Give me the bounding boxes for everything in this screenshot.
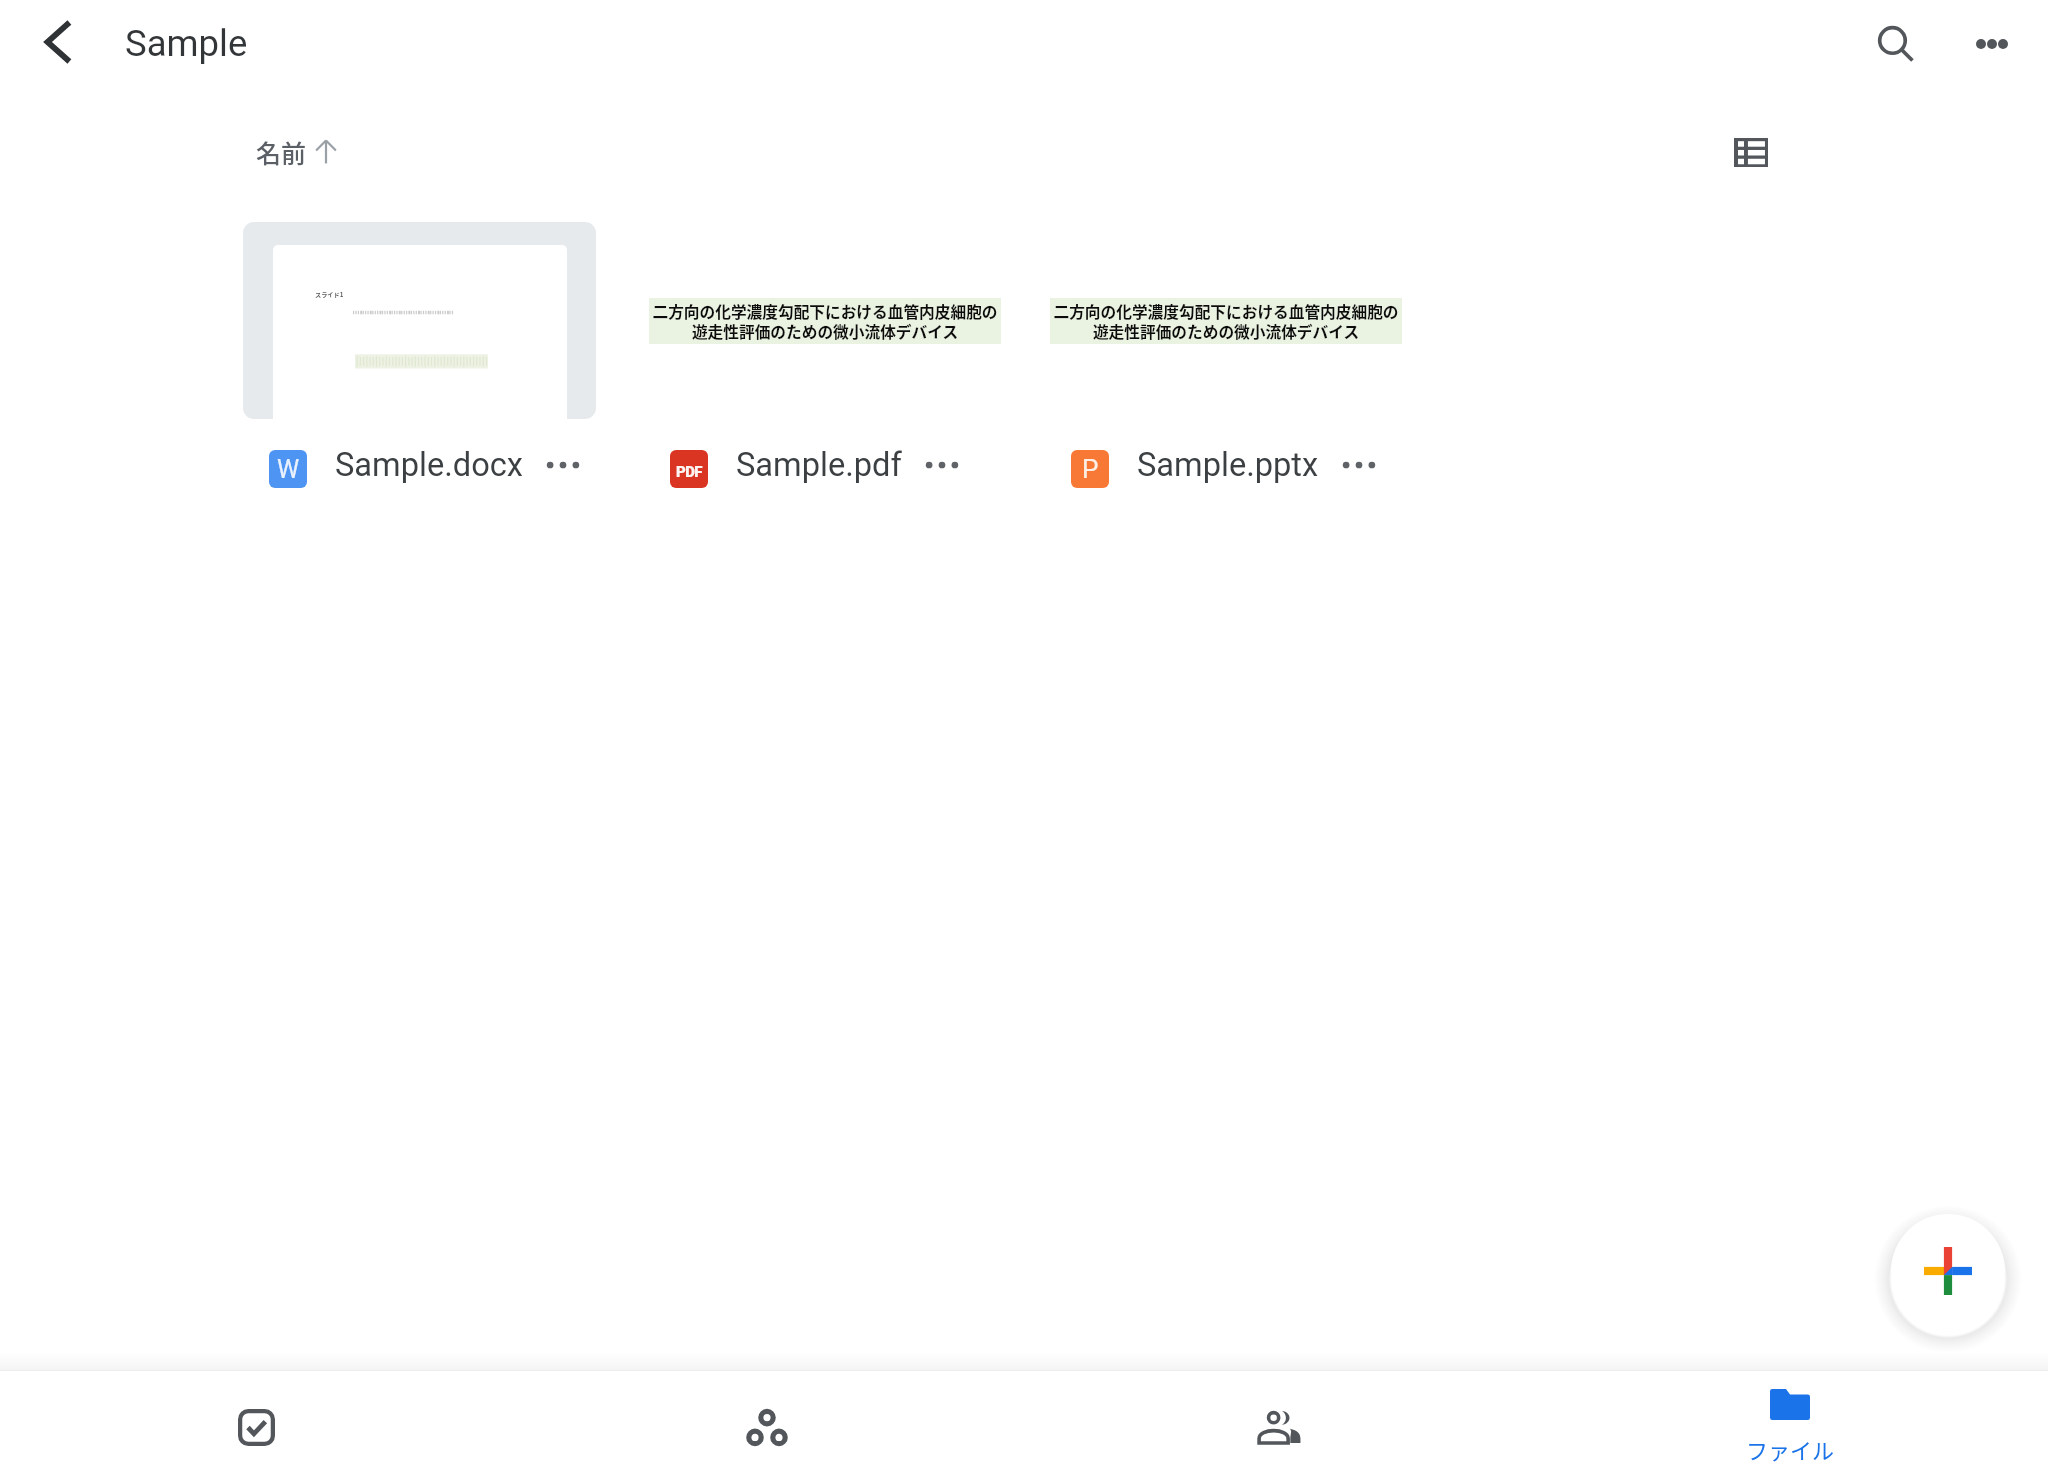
button[interactable]: ファイル <box>1700 1371 1880 1483</box>
button[interactable]: 新規作成 <box>1891 1214 2005 1328</box>
staticText: スライド1 <box>315 290 344 299</box>
staticText: 名前 <box>256 134 307 170</box>
staticText: Sample.docx <box>335 446 523 484</box>
button[interactable]: リスト表示に切り替え <box>1711 112 1791 192</box>
button[interactable]: W <box>269 437 587 493</box>
staticText: ファイル <box>1746 1433 1835 1465</box>
staticText: 二方向の化学濃度勾配下における血管内皮細胞の 遊走性評価のための微小流体デバイス <box>1053 300 1399 343</box>
button[interactable]: タスク <box>200 1371 312 1483</box>
button[interactable]: PDF <box>670 437 966 493</box>
staticText: W <box>277 455 300 484</box>
button[interactable]: 戻る <box>14 0 98 84</box>
staticText: Sample <box>125 22 248 65</box>
button[interactable]: 検索 <box>1852 0 1940 88</box>
staticText: P <box>1082 454 1099 484</box>
button[interactable]: 二方向の化学濃度勾配下における血管内皮細胞の 遊走性評価のための微小流体デバイス <box>1045 222 1398 487</box>
staticText: Sample.pdf <box>736 446 902 484</box>
button[interactable]: アクティビティ <box>711 1371 823 1483</box>
button[interactable]: Sample.pptx のその他の操作 <box>1335 441 1383 489</box>
staticText: PDF <box>676 463 702 481</box>
button[interactable]: P <box>1071 437 1383 493</box>
button[interactable]: Sample.docx のその他の操作 <box>539 441 587 489</box>
button[interactable]: 共有 <box>1224 1371 1336 1483</box>
button[interactable]: スライド1 <box>243 222 596 487</box>
button[interactable]: 二方向の化学濃度勾配下における血管内皮細胞の 遊走性評価のための微小流体デバイス <box>644 222 997 487</box>
staticText: Sample.pptx <box>1137 446 1319 484</box>
button[interactable]: 名前 <box>243 122 339 182</box>
staticText: 二方向の化学濃度勾配下における血管内皮細胞の 遊走性評価のための微小流体デバイス <box>652 300 998 343</box>
button[interactable]: その他のオプション <box>1948 0 2036 88</box>
button[interactable]: Sample.pdf のその他の操作 <box>918 441 966 489</box>
